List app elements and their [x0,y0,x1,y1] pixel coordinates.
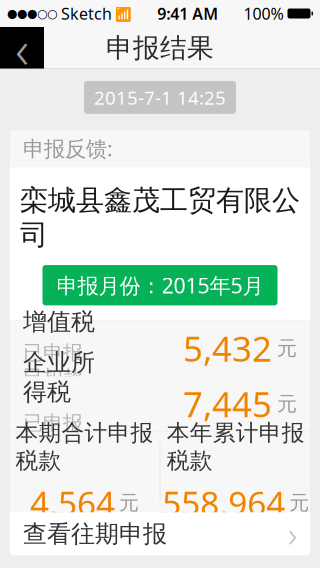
staticText: Sketch [57,3,112,24]
staticText: 100% [243,3,283,24]
staticText: 558,964 [162,481,285,525]
staticText: 本年累计申报税款 [167,419,305,475]
staticText: 5,432 [183,325,272,371]
staticText: 4,564 [30,481,115,525]
staticText: 元 [289,490,309,515]
button[interactable]: Back [0,27,44,69]
staticText: 本期合计申报税款 [15,419,153,475]
staticText: 栾城县鑫茂工贸有限公司 [20,183,300,252]
staticText: 9:41 AM [157,3,218,24]
staticText: ‹ [15,13,29,83]
staticText: 申报反馈: [23,134,113,162]
staticText: 申报月份：2015年5月 [56,271,263,299]
staticText: 企业所得税 [23,348,95,407]
staticText: 已申报 已扣款 [23,341,83,390]
staticText: 📶 [112,5,132,22]
staticText: ●●●○○ [7,7,57,20]
staticText: 元 [277,336,297,361]
staticText: › [288,511,297,557]
staticText: 已申报 已扣款 [23,411,83,460]
staticText: 申报结果 [106,32,214,64]
staticText: 7,445 [183,381,272,427]
staticText: 查看往期申报 [23,519,167,549]
staticText: 增值税 [23,307,95,337]
staticText: 元 [119,490,139,515]
button[interactable]: 查看往期申报 [9,512,311,555]
staticText: 元 [277,392,297,416]
staticText: 2015-7-1 14:25 [94,85,226,110]
